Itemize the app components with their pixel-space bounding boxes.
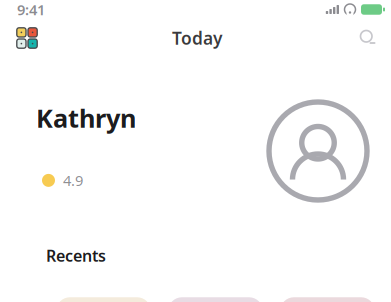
staticText: 4.9 [63,171,83,190]
button[interactable]: Categories [9,21,45,55]
button[interactable]: Recent item [280,297,375,302]
button[interactable]: Recent item [56,297,151,302]
button[interactable]: Recent item [168,297,263,302]
staticText: 9:41 [17,0,45,19]
staticText: Kathryn [36,101,136,135]
staticText: Recents [46,245,106,266]
button[interactable]: Search [351,21,385,55]
staticText: Today [172,26,222,49]
